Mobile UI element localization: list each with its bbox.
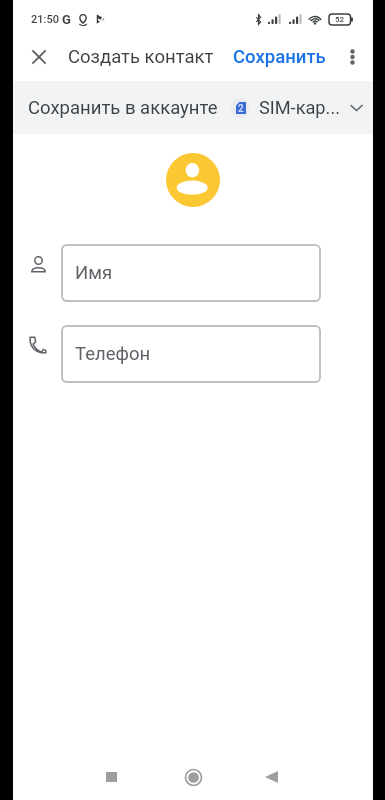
button[interactable]: Телефон bbox=[61, 325, 321, 383]
button[interactable]: Recent apps bbox=[93, 759, 129, 795]
button[interactable]: Back bbox=[253, 759, 289, 795]
staticText: 52 bbox=[335, 15, 345, 24]
button[interactable]: Сохранить bbox=[233, 46, 326, 68]
button[interactable]: Сохранить в аккаунте bbox=[13, 81, 373, 134]
button[interactable]: Close bbox=[27, 45, 51, 69]
button[interactable]: Имя bbox=[61, 244, 321, 302]
staticText: Сохранить в аккаунте bbox=[28, 97, 218, 119]
staticText: SIM-кар... bbox=[259, 97, 340, 118]
staticText: 2 bbox=[238, 103, 244, 115]
staticText: Телефон bbox=[75, 343, 151, 365]
staticText: G bbox=[62, 12, 71, 27]
button[interactable]: Home bbox=[175, 759, 211, 795]
button[interactable]: Add photo bbox=[166, 153, 220, 207]
staticText: Сохранить bbox=[233, 46, 326, 68]
button[interactable]: More options bbox=[340, 45, 364, 69]
staticText: 21:50 bbox=[31, 13, 59, 26]
staticText: Создать контакт bbox=[68, 46, 214, 68]
staticText: Имя bbox=[75, 262, 113, 284]
